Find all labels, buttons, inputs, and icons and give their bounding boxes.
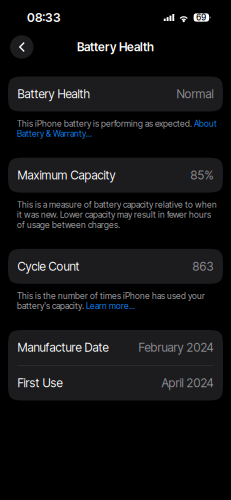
- staticText: Manufacture Date: [17, 340, 108, 355]
- staticText: This is a measure of battery capacity re…: [17, 200, 217, 230]
- staticText: 69: [196, 12, 206, 22]
- button[interactable]: Maximum Capacity: [8, 158, 223, 193]
- staticText: February 2024: [138, 340, 213, 355]
- staticText: 85%: [190, 168, 213, 182]
- button[interactable]: Battery Health: [8, 76, 223, 111]
- staticText: April 2024: [161, 376, 213, 390]
- staticText: This iPhone battery is performing as exp…: [17, 118, 217, 139]
- staticText: Battery Health: [17, 87, 89, 101]
- staticText: 08:33: [27, 10, 61, 25]
- button[interactable]: Back: [10, 35, 33, 59]
- staticText: 863: [192, 259, 213, 274]
- staticText: Cycle Count: [17, 259, 79, 274]
- staticText: This is the number of times iPhone has u…: [17, 291, 205, 311]
- button[interactable]: Manufacture Date: [8, 330, 223, 365]
- staticText: Maximum Capacity: [17, 168, 115, 182]
- button[interactable]: First Use: [8, 365, 223, 400]
- staticText: Normal: [176, 87, 213, 101]
- staticText: Battery Health: [77, 40, 154, 54]
- staticText: First Use: [17, 376, 62, 390]
- button[interactable]: Cycle Count: [8, 249, 223, 284]
